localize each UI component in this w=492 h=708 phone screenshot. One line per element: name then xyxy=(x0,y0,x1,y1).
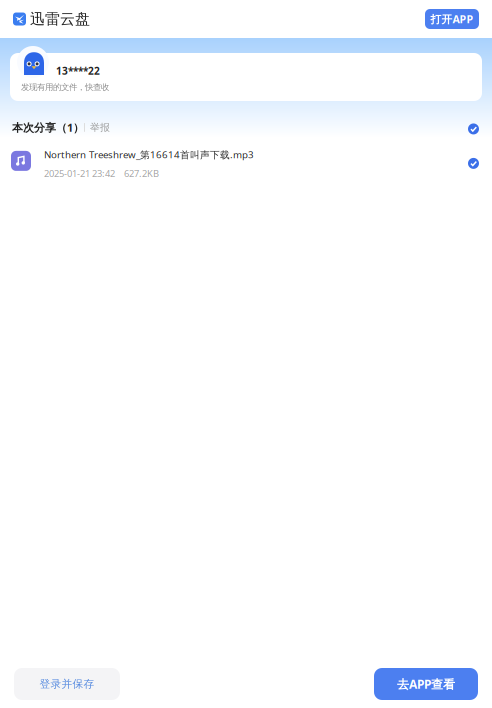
staticText: 本次分享（1） xyxy=(12,120,84,135)
button[interactable]: 打开APP xyxy=(425,9,479,29)
button[interactable]: 全选 xyxy=(468,123,479,134)
staticText: 迅雷云盘 xyxy=(30,10,90,28)
staticText: 发现有用的文件，快查收 xyxy=(21,82,109,92)
staticText: 举报 xyxy=(90,121,110,134)
button[interactable]: 登录并保存 xyxy=(14,668,120,700)
staticText: 13****22 xyxy=(56,64,100,78)
staticText: Northern Treeshrew_第16614首叫声下载.mp3 xyxy=(44,148,254,161)
staticText: 627.2KB xyxy=(124,167,159,180)
button[interactable]: Northern Treeshrew_第16614首叫声下载.mp3 xyxy=(0,135,492,180)
button[interactable]: 举报 xyxy=(90,121,110,134)
button[interactable]: 去APP查看 xyxy=(374,668,478,700)
staticText: 打开APP xyxy=(430,12,473,26)
staticText: 登录并保存 xyxy=(39,677,94,690)
staticText: 2025-01-21 23:42 xyxy=(44,167,115,180)
button[interactable]: 选择文件 xyxy=(468,158,479,169)
staticText: 去APP查看 xyxy=(397,676,455,692)
